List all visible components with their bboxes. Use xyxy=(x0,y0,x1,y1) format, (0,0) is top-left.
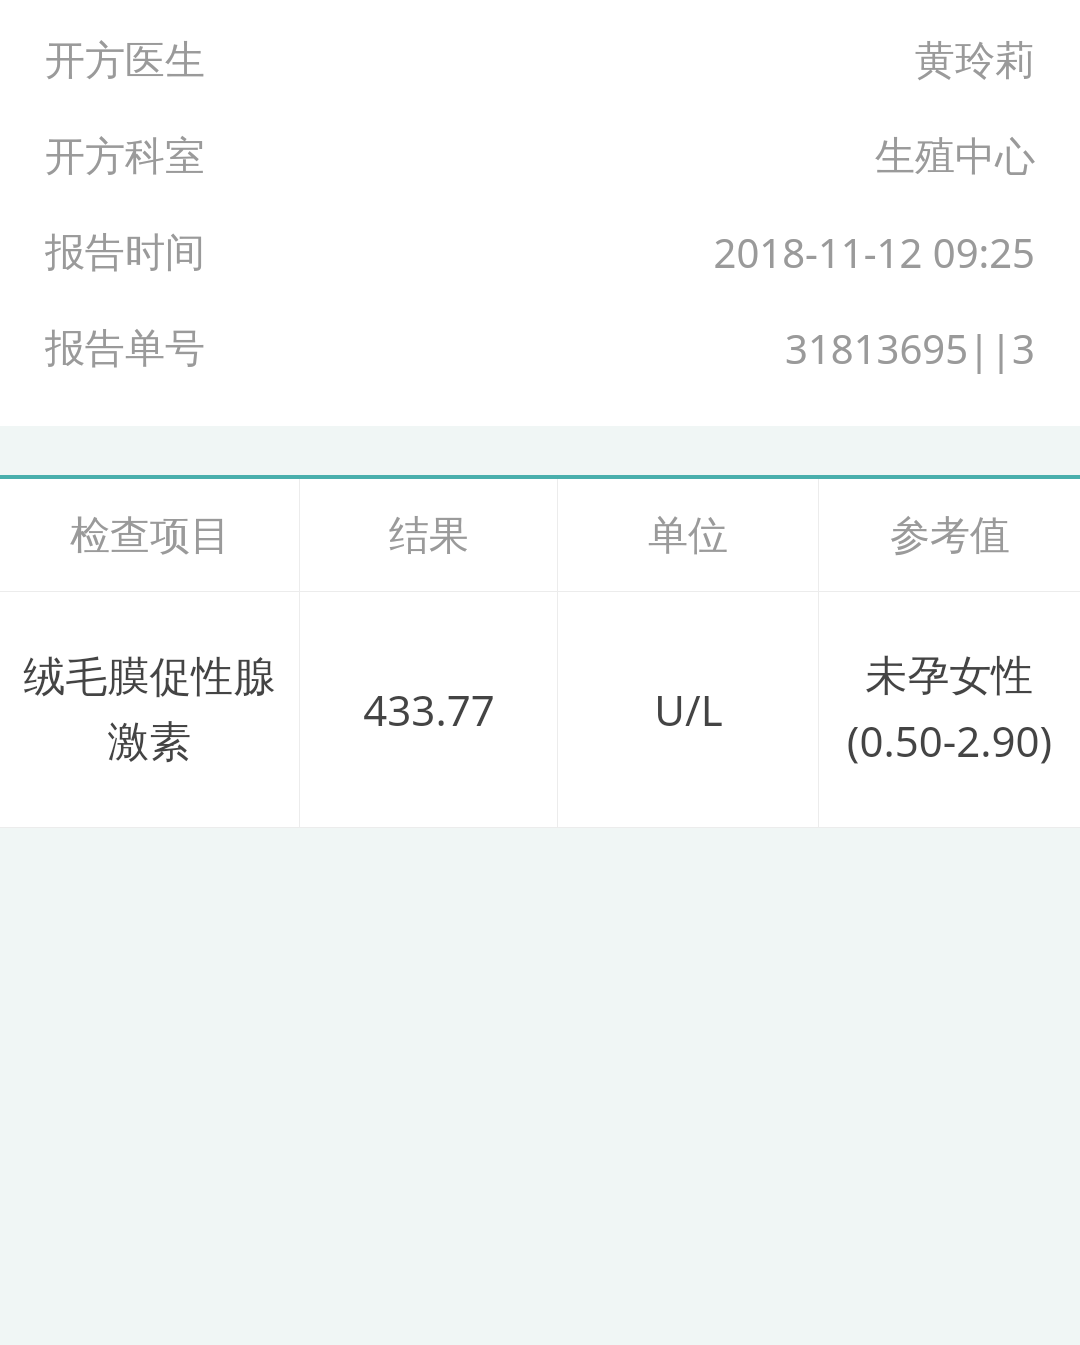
staticText: 单位 xyxy=(648,510,728,560)
staticText: 开方科室 xyxy=(45,131,205,181)
staticText: 31813695||3 xyxy=(785,321,1035,375)
staticText: 未孕女性(0.50-2.90) xyxy=(837,650,1062,770)
button[interactable]: 报告单号 xyxy=(0,300,1080,396)
staticText: 绒毛膜促性腺激素 xyxy=(18,651,281,768)
button[interactable]: 开方医生 xyxy=(0,12,1080,108)
staticText: 参考值 xyxy=(890,510,1010,560)
button[interactable]: 报告时间 xyxy=(0,204,1080,300)
staticText: 开方医生 xyxy=(45,35,205,85)
staticText: 2018-11-12 09:25 xyxy=(713,225,1035,279)
button[interactable]: 绒毛膜促性腺激素 xyxy=(0,592,1080,827)
staticText: 433.77 xyxy=(363,681,495,738)
button[interactable]: 开方科室 xyxy=(0,108,1080,204)
staticText: 结果 xyxy=(389,510,469,560)
staticText: 报告时间 xyxy=(45,227,205,277)
staticText: 检查项目 xyxy=(70,510,230,560)
staticText: 黄玲莉 xyxy=(915,35,1035,85)
staticText: 报告单号 xyxy=(45,323,205,373)
staticText: U/L xyxy=(654,681,723,738)
staticText: 生殖中心 xyxy=(875,131,1035,181)
